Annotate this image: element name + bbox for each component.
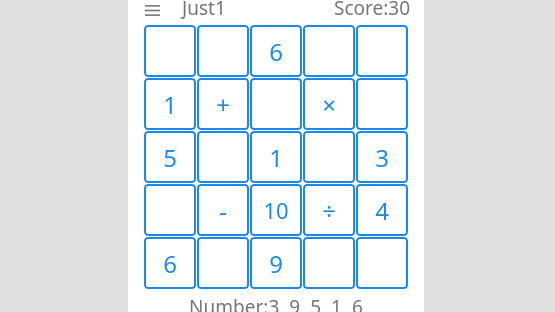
button[interactable]: Empty cell xyxy=(356,237,408,289)
button[interactable]: Empty cell xyxy=(356,25,408,77)
staticText: Score:30 xyxy=(334,0,411,21)
button[interactable]: Empty cell xyxy=(144,184,196,236)
staticText: 9 xyxy=(269,247,283,280)
button[interactable]: Empty cell xyxy=(303,131,355,183)
staticText: 1 xyxy=(163,88,177,121)
button[interactable]: Cell 3 xyxy=(356,131,408,183)
button[interactable]: Empty cell xyxy=(197,25,249,77)
staticText: 3 xyxy=(375,141,389,174)
button[interactable]: Cell 1 xyxy=(144,78,196,130)
staticText: 6 xyxy=(163,247,177,280)
button[interactable]: Cell 9 xyxy=(250,237,302,289)
staticText: 10 xyxy=(263,195,289,225)
staticText: + xyxy=(216,88,230,121)
button[interactable]: Cell × xyxy=(303,78,355,130)
button[interactable]: Cell 5 xyxy=(144,131,196,183)
staticText: 6 xyxy=(269,35,283,68)
button[interactable]: Cell 6 xyxy=(144,237,196,289)
button[interactable]: Empty cell xyxy=(250,78,302,130)
button[interactable]: Cell 10 xyxy=(250,184,302,236)
staticText: × xyxy=(322,88,336,121)
button[interactable]: Cell 6 xyxy=(250,25,302,77)
button[interactable]: Empty cell xyxy=(303,237,355,289)
button[interactable]: Empty cell xyxy=(356,78,408,130)
button[interactable]: Menu xyxy=(143,1,161,19)
button[interactable]: Empty cell xyxy=(144,25,196,77)
staticText: Number:3, 9, 5, 1, 6 xyxy=(128,294,424,312)
staticText: 4 xyxy=(375,194,389,227)
staticText: ÷ xyxy=(322,194,336,227)
button[interactable]: Cell 4 xyxy=(356,184,408,236)
button[interactable]: Cell - xyxy=(197,184,249,236)
button[interactable]: Empty cell xyxy=(197,237,249,289)
staticText: 1 xyxy=(269,141,283,174)
staticText: Just1 xyxy=(182,0,226,21)
button[interactable]: Empty cell xyxy=(303,25,355,77)
staticText: 5 xyxy=(163,141,177,174)
button[interactable]: Cell + xyxy=(197,78,249,130)
button[interactable]: Cell 1 xyxy=(250,131,302,183)
staticText: - xyxy=(219,194,227,227)
button[interactable]: Empty cell xyxy=(197,131,249,183)
button[interactable]: Cell ÷ xyxy=(303,184,355,236)
